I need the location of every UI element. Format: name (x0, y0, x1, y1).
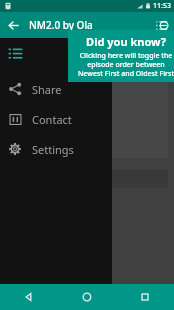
button[interactable]: Back (0, 284, 58, 310)
staticText: Clicking here will toggle the episode or… (74, 51, 174, 78)
staticText: Did you know? (86, 34, 166, 49)
button[interactable]: Share (0, 74, 112, 104)
staticText: ng 2.0 Show (12, 86, 60, 97)
staticText: NM2.0 by Ola (29, 18, 93, 32)
button[interactable]: Sort order (148, 12, 174, 38)
button[interactable]: Did you know? (68, 30, 174, 82)
staticText: 11:53 (153, 1, 171, 11)
button[interactable]: Recents (116, 284, 174, 310)
button[interactable]: Download (6, 170, 168, 188)
staticText: Played (75, 63, 100, 74)
button[interactable]: Back (0, 12, 26, 38)
button[interactable]: Settings (0, 134, 112, 164)
staticText: Share (32, 82, 62, 97)
button[interactable]: Home (58, 284, 116, 310)
button[interactable]: Contact (0, 104, 112, 134)
button[interactable]: Episode list (0, 38, 112, 68)
staticText: Settings (32, 142, 74, 157)
staticText: Contact (32, 112, 72, 127)
button[interactable]: Played (12, 59, 162, 77)
